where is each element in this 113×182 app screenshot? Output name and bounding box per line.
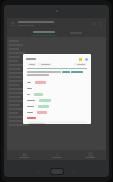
button[interactable] [23, 85, 91, 91]
button[interactable]: Settings [84, 57, 88, 61]
button[interactable] [9, 111, 96, 115]
button[interactable] [9, 87, 96, 91]
button[interactable]: Home [50, 168, 64, 175]
button[interactable] [23, 79, 91, 85]
button[interactable] [9, 63, 96, 67]
button[interactable] [23, 97, 91, 103]
button[interactable]: More options [97, 21, 103, 27]
button[interactable] [9, 47, 96, 51]
button[interactable] [23, 91, 91, 97]
button[interactable] [67, 29, 85, 37]
button[interactable] [9, 99, 96, 103]
button[interactable] [38, 63, 52, 66]
button[interactable] [9, 39, 96, 43]
button[interactable] [9, 95, 96, 99]
button[interactable] [9, 123, 96, 127]
button[interactable]: Search [91, 21, 97, 27]
button[interactable] [9, 91, 96, 95]
button[interactable] [29, 29, 59, 37]
button[interactable] [27, 121, 87, 124]
button[interactable] [9, 119, 96, 123]
button[interactable]: Warning [78, 57, 82, 61]
button[interactable]: Menu [10, 21, 16, 27]
button[interactable] [9, 83, 96, 87]
button[interactable] [9, 79, 96, 83]
button[interactable] [9, 75, 96, 79]
button[interactable] [9, 71, 96, 75]
button[interactable]: Edit [40, 150, 73, 160]
button[interactable]: Reports [73, 150, 106, 160]
button[interactable] [9, 107, 96, 111]
button[interactable] [9, 43, 96, 47]
button[interactable] [74, 63, 87, 66]
button[interactable] [9, 55, 96, 59]
button[interactable] [9, 51, 96, 55]
button[interactable]: Home [7, 150, 40, 160]
button[interactable] [9, 115, 96, 119]
button[interactable] [9, 59, 96, 63]
button[interactable] [9, 103, 96, 107]
button[interactable] [27, 63, 36, 66]
button[interactable] [23, 103, 91, 109]
button[interactable] [9, 67, 96, 71]
button[interactable] [23, 109, 91, 115]
